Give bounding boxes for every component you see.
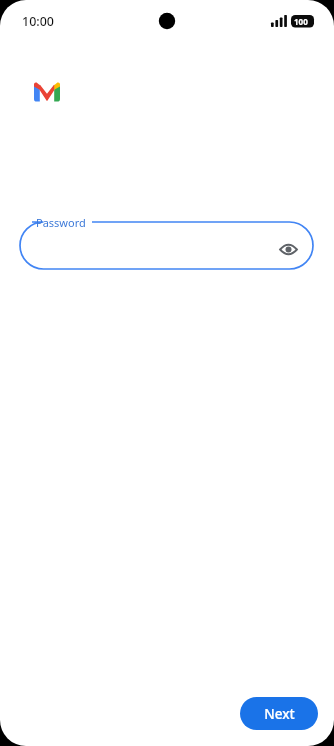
staticText: 10:00 [22,13,55,30]
staticText: Password [36,215,86,230]
button[interactable]: Next [240,697,318,730]
button[interactable]: Show password [277,238,300,261]
button[interactable]: Password [20,222,313,269]
staticText: 100 [294,16,308,27]
staticText: Next [264,705,295,723]
